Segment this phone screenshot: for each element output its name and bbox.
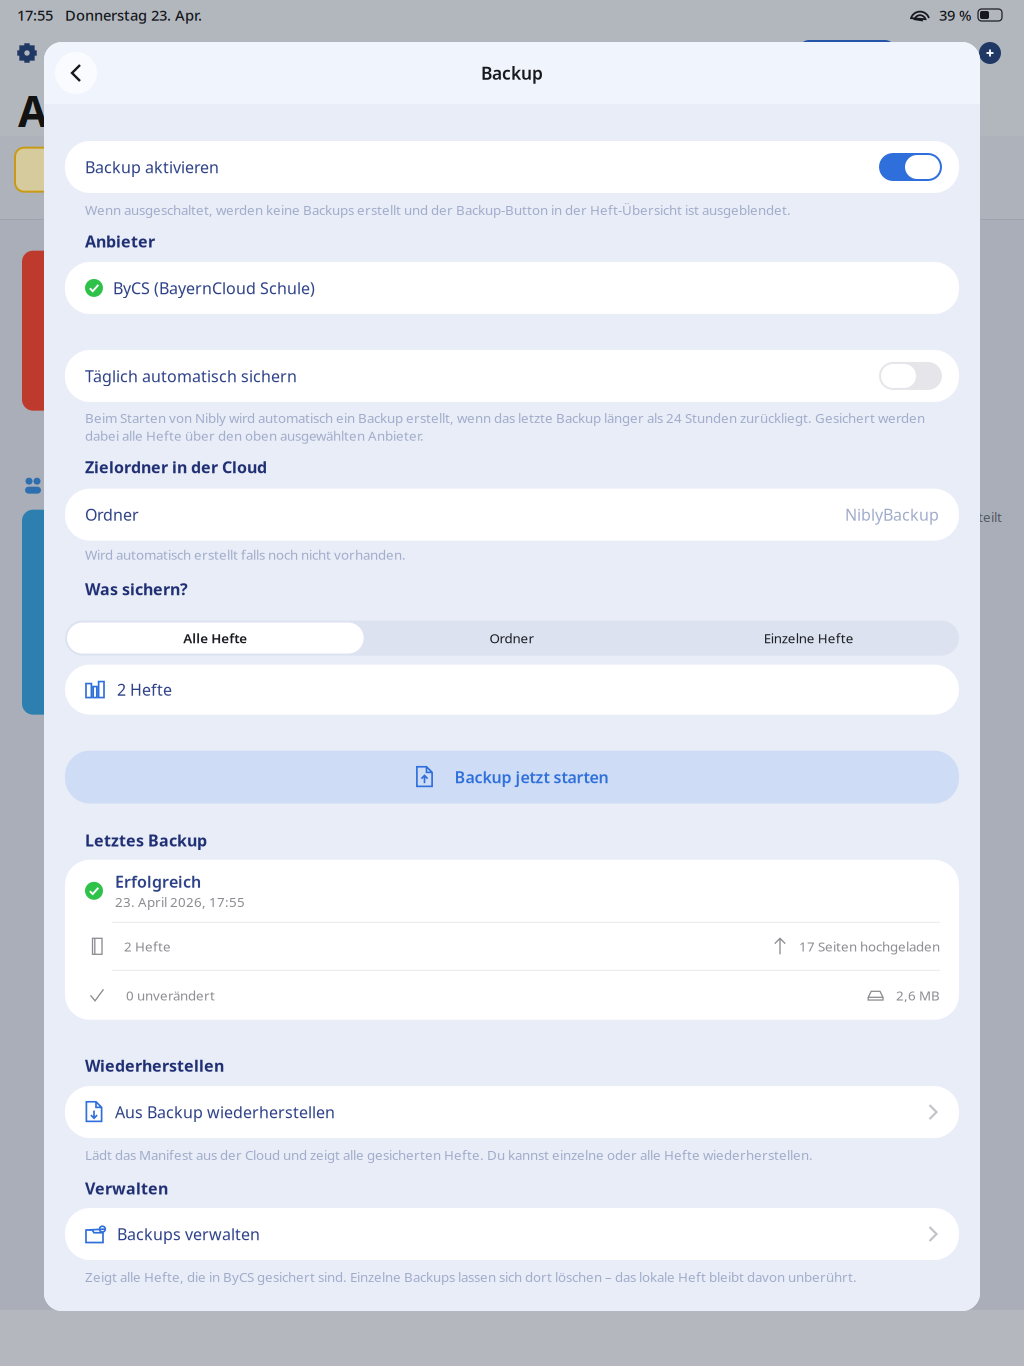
staticText: Letztes Backup [85,830,207,851]
staticText: 39 % [939,5,971,25]
staticText: Anbieter [85,231,155,252]
staticText: Wiederherstellen [85,1055,224,1076]
staticText: 23. April 2026, 17:55 [115,893,245,911]
button[interactable]: Backup aktivieren [65,141,959,193]
staticText: Donnerstag 23. Apr. [65,5,202,25]
staticText: 2 Hefte [117,679,172,700]
staticText: 2,6 MB [896,986,940,1004]
staticText: Backup jetzt starten [454,766,608,788]
button[interactable]: Ordner [65,489,959,541]
staticText: Backup aktivieren [85,156,219,178]
staticText: Backups verwalten [117,1223,260,1245]
staticText: Beim Starten von Nibly wird automatisch … [85,409,925,444]
button[interactable]: Backup jetzt starten [65,751,959,804]
staticText: Lädt das Manifest aus der Cloud und zeig… [85,1146,813,1164]
staticText: A [18,82,48,139]
staticText: 2 Hefte [124,937,171,955]
staticText: Einzelne Hefte [764,629,854,647]
button[interactable]: Backups verwalten [65,1208,959,1260]
staticText: 17:55 [17,5,53,25]
staticText: Wird automatisch erstellt falls noch nic… [85,546,406,563]
staticText: Zeigt alle Hefte, die in ByCS gesichert … [85,1268,857,1286]
staticText: ByCS (BayernCloud Schule) [113,277,315,298]
button[interactable]: 2 Hefte [65,665,959,715]
button[interactable]: Back [55,52,97,94]
button[interactable]: Einzelne Hefte [660,623,957,654]
staticText: 17 Seiten hochgeladen [799,937,940,955]
staticText: Zielordner in der Cloud [85,456,267,478]
staticText: teilt [978,508,1002,526]
button[interactable]: Add [979,42,1001,64]
staticText: Wenn ausgeschaltet, werden keine Backups… [85,201,791,219]
staticText: Verwalten [85,1178,168,1199]
button[interactable]: Aus Backup wiederherstellen [65,1086,959,1138]
staticText: 0 unverändert [126,986,215,1004]
staticText: Täglich automatisch sichern [85,365,297,386]
staticText: Backup [481,61,543,84]
staticText: Was sichern? [85,578,188,599]
staticText: NiblyBackup [845,504,939,525]
button[interactable]: ByCS (BayernCloud Schule) [65,262,959,314]
staticText: Ordner [489,629,534,647]
button[interactable]: Alle Hefte [67,623,364,654]
staticText: Alle Hefte [183,629,247,647]
staticText: Ordner [85,504,139,525]
staticText: Aus Backup wiederherstellen [115,1101,335,1123]
staticText: Erfolgreich [115,871,201,892]
button[interactable]: Ordner [364,623,660,654]
button[interactable]: Täglich automatisch sichern [65,350,959,402]
